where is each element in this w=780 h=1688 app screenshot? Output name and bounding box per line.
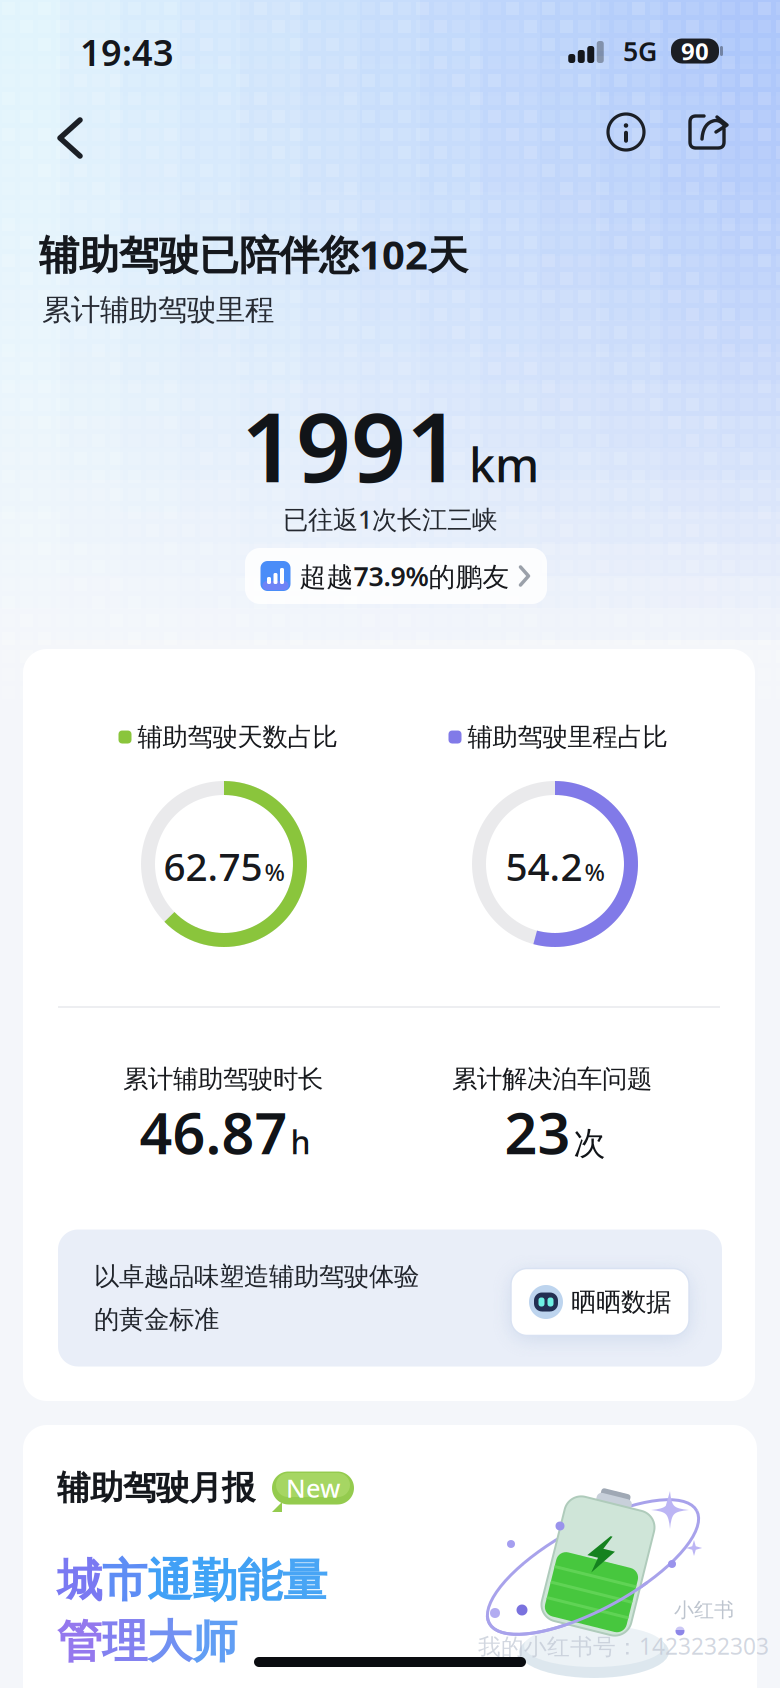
staticText: 辅助驾驶天数占比: [137, 721, 337, 752]
button[interactable]: Share: [685, 112, 729, 152]
staticText: 大: [147, 1614, 192, 1670]
staticText: km: [469, 433, 539, 495]
staticText: 管: [57, 1614, 102, 1670]
button[interactable]: Back: [42, 110, 98, 166]
staticText: 晒晒数据: [571, 1286, 671, 1317]
staticText: 能: [237, 1553, 282, 1609]
staticText: 1991: [241, 381, 461, 509]
staticText: 19:43: [80, 28, 174, 76]
staticText: 辅助驾驶里程占比: [467, 721, 667, 752]
button[interactable]: Info: [606, 112, 646, 152]
button[interactable]: 晒晒数据: [511, 1268, 689, 1335]
staticText: 累计辅助驾驶时长: [123, 1063, 323, 1094]
staticText: 62.75: [163, 840, 262, 892]
staticText: 46.87: [139, 1094, 287, 1170]
staticText: h: [290, 1121, 310, 1163]
staticText: New: [286, 1471, 340, 1505]
staticText: 通: [147, 1553, 192, 1609]
staticText: 勤: [192, 1553, 237, 1609]
staticText: %: [264, 856, 284, 888]
staticText: %: [584, 856, 604, 888]
button[interactable]: 辅助驾驶月报: [23, 1425, 757, 1688]
staticText: 5G: [623, 33, 657, 69]
staticText: 辅助驾驶已陪伴您102天: [39, 227, 468, 280]
staticText: 累计解决泊车问题: [452, 1063, 652, 1094]
staticText: 23: [504, 1094, 570, 1170]
staticText: 次: [573, 1124, 605, 1163]
staticText: 我的小红书号：1423232303: [478, 1631, 769, 1661]
staticText: 辅助驾驶月报: [57, 1467, 255, 1508]
staticText: 师: [192, 1614, 237, 1670]
staticText: 的黄金标准: [94, 1304, 219, 1335]
staticText: 超越73.9%的鹏友: [299, 558, 509, 594]
staticText: 90: [681, 35, 709, 67]
staticText: 理: [102, 1614, 147, 1670]
staticText: 54.2: [505, 840, 582, 892]
staticText: 城: [57, 1553, 102, 1609]
staticText: 小红书: [674, 1598, 734, 1622]
staticText: 量: [282, 1553, 327, 1609]
button[interactable]: 超越73.9%的鹏友: [245, 548, 547, 604]
staticText: 市: [102, 1553, 147, 1609]
staticText: 以卓越品味塑造辅助驾驶体验: [94, 1261, 419, 1292]
staticText: 已往返1次长江三峡: [283, 502, 497, 536]
staticText: 累计辅助驾驶里程: [42, 292, 274, 328]
